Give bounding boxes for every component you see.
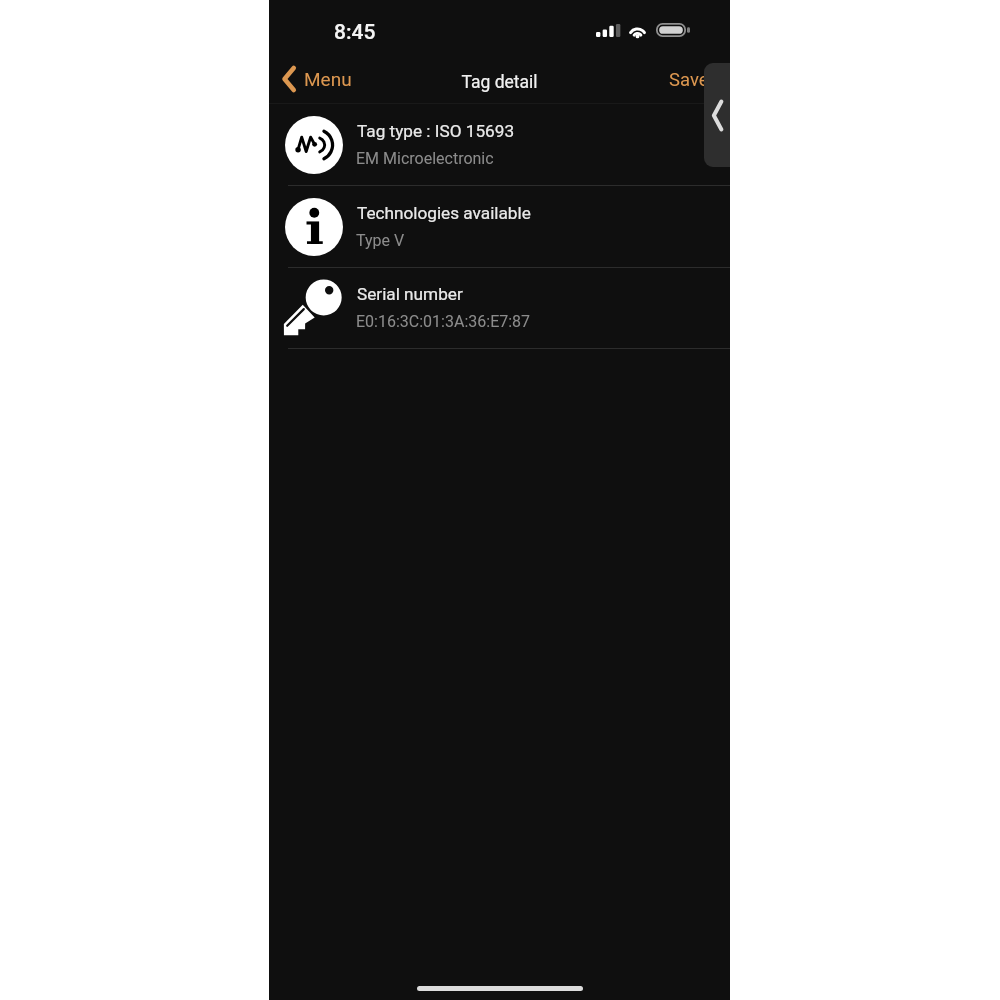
staticText: Technologies available: [357, 203, 531, 223]
button[interactable]: Save: [663, 62, 715, 98]
staticText: E0:16:3C:01:3A:36:E7:87: [356, 312, 531, 331]
button[interactable]: Menu: [282, 61, 352, 97]
staticText: Save: [669, 69, 709, 91]
button[interactable]: Serial number: [269, 267, 730, 348]
staticText: 8:45: [334, 20, 376, 45]
button[interactable]: Technologies available: [269, 186, 730, 267]
staticText: Menu: [304, 68, 352, 90]
button[interactable]: Tag type : ISO 15693: [269, 104, 730, 185]
button[interactable]: Open side panel: [704, 63, 730, 167]
staticText: EM Microelectronic: [356, 149, 494, 168]
staticText: Type V: [356, 231, 405, 250]
staticText: Serial number: [357, 284, 463, 304]
staticText: Tag detail: [269, 72, 730, 93]
staticText: Tag type : ISO 15693: [357, 121, 515, 141]
